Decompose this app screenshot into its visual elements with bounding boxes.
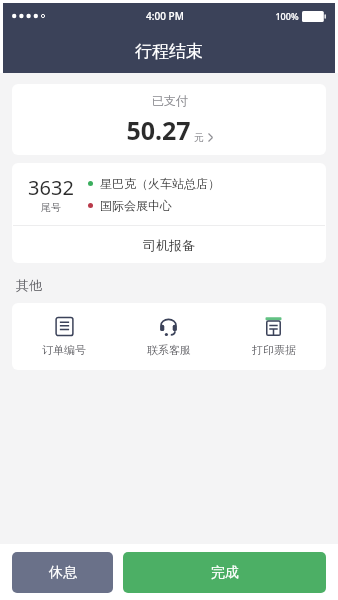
button[interactable]: Order number [12,303,116,370]
staticText: 国际会展中心 [100,198,172,213]
button[interactable]: Print receipt [221,303,326,370]
staticText: 休息 [49,564,77,582]
button[interactable]: Contact support [116,303,221,370]
button[interactable]: 3632 [12,163,326,225]
button[interactable]: 已支付 [12,84,326,155]
staticText: 元 [194,131,204,144]
button[interactable]: 司机报备 [12,226,326,263]
staticText: 其他 [16,277,42,293]
button[interactable]: 完成 [123,552,326,593]
staticText: 订单编号 [42,343,86,357]
staticText: 打印票据 [252,343,296,357]
staticText: 尾号 [41,201,61,214]
staticText: 星巴克（火车站总店） [100,176,220,191]
staticText: 行程结束 [135,41,203,62]
staticText: 3632 [28,174,74,201]
staticText: 完成 [211,564,239,582]
staticText: 4:00 PM [146,9,184,23]
staticText: 联系客服 [147,343,191,357]
staticText: 50.27 [126,113,191,147]
button[interactable]: 休息 [12,552,113,593]
staticText: 100% [275,10,299,22]
staticText: 已支付 [152,93,188,108]
staticText: 司机报备 [143,237,195,253]
